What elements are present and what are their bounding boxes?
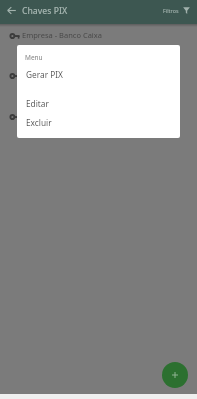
staticText: Excluir: [26, 117, 52, 128]
button[interactable]: Back: [0, 0, 22, 21]
button[interactable]: Pessoal - Banco Itau: [0, 67, 197, 84]
button[interactable]: Empresa - Banco Caixa: [0, 27, 197, 44]
staticText: Editar: [26, 98, 49, 109]
button[interactable]: Excluir: [17, 114, 180, 131]
staticText: Gerar PIX: [26, 69, 63, 80]
staticText: Empresa - Banco Caixa: [22, 30, 102, 40]
button[interactable]: Gerar PIX: [17, 67, 180, 81]
button[interactable]: Pessoal - Nubank: [0, 108, 197, 125]
staticText: Pessoal - Nubank: [22, 111, 83, 121]
button[interactable]: Filtros: [157, 7, 197, 14]
button[interactable]: Editar: [17, 95, 180, 112]
staticText: Menu: [25, 53, 43, 62]
button[interactable]: Add: [162, 362, 188, 388]
staticText: Filtros: [163, 7, 179, 14]
staticText: Pessoal - Banco Itau: [22, 70, 93, 80]
staticText: Chaves PIX: [22, 5, 68, 17]
